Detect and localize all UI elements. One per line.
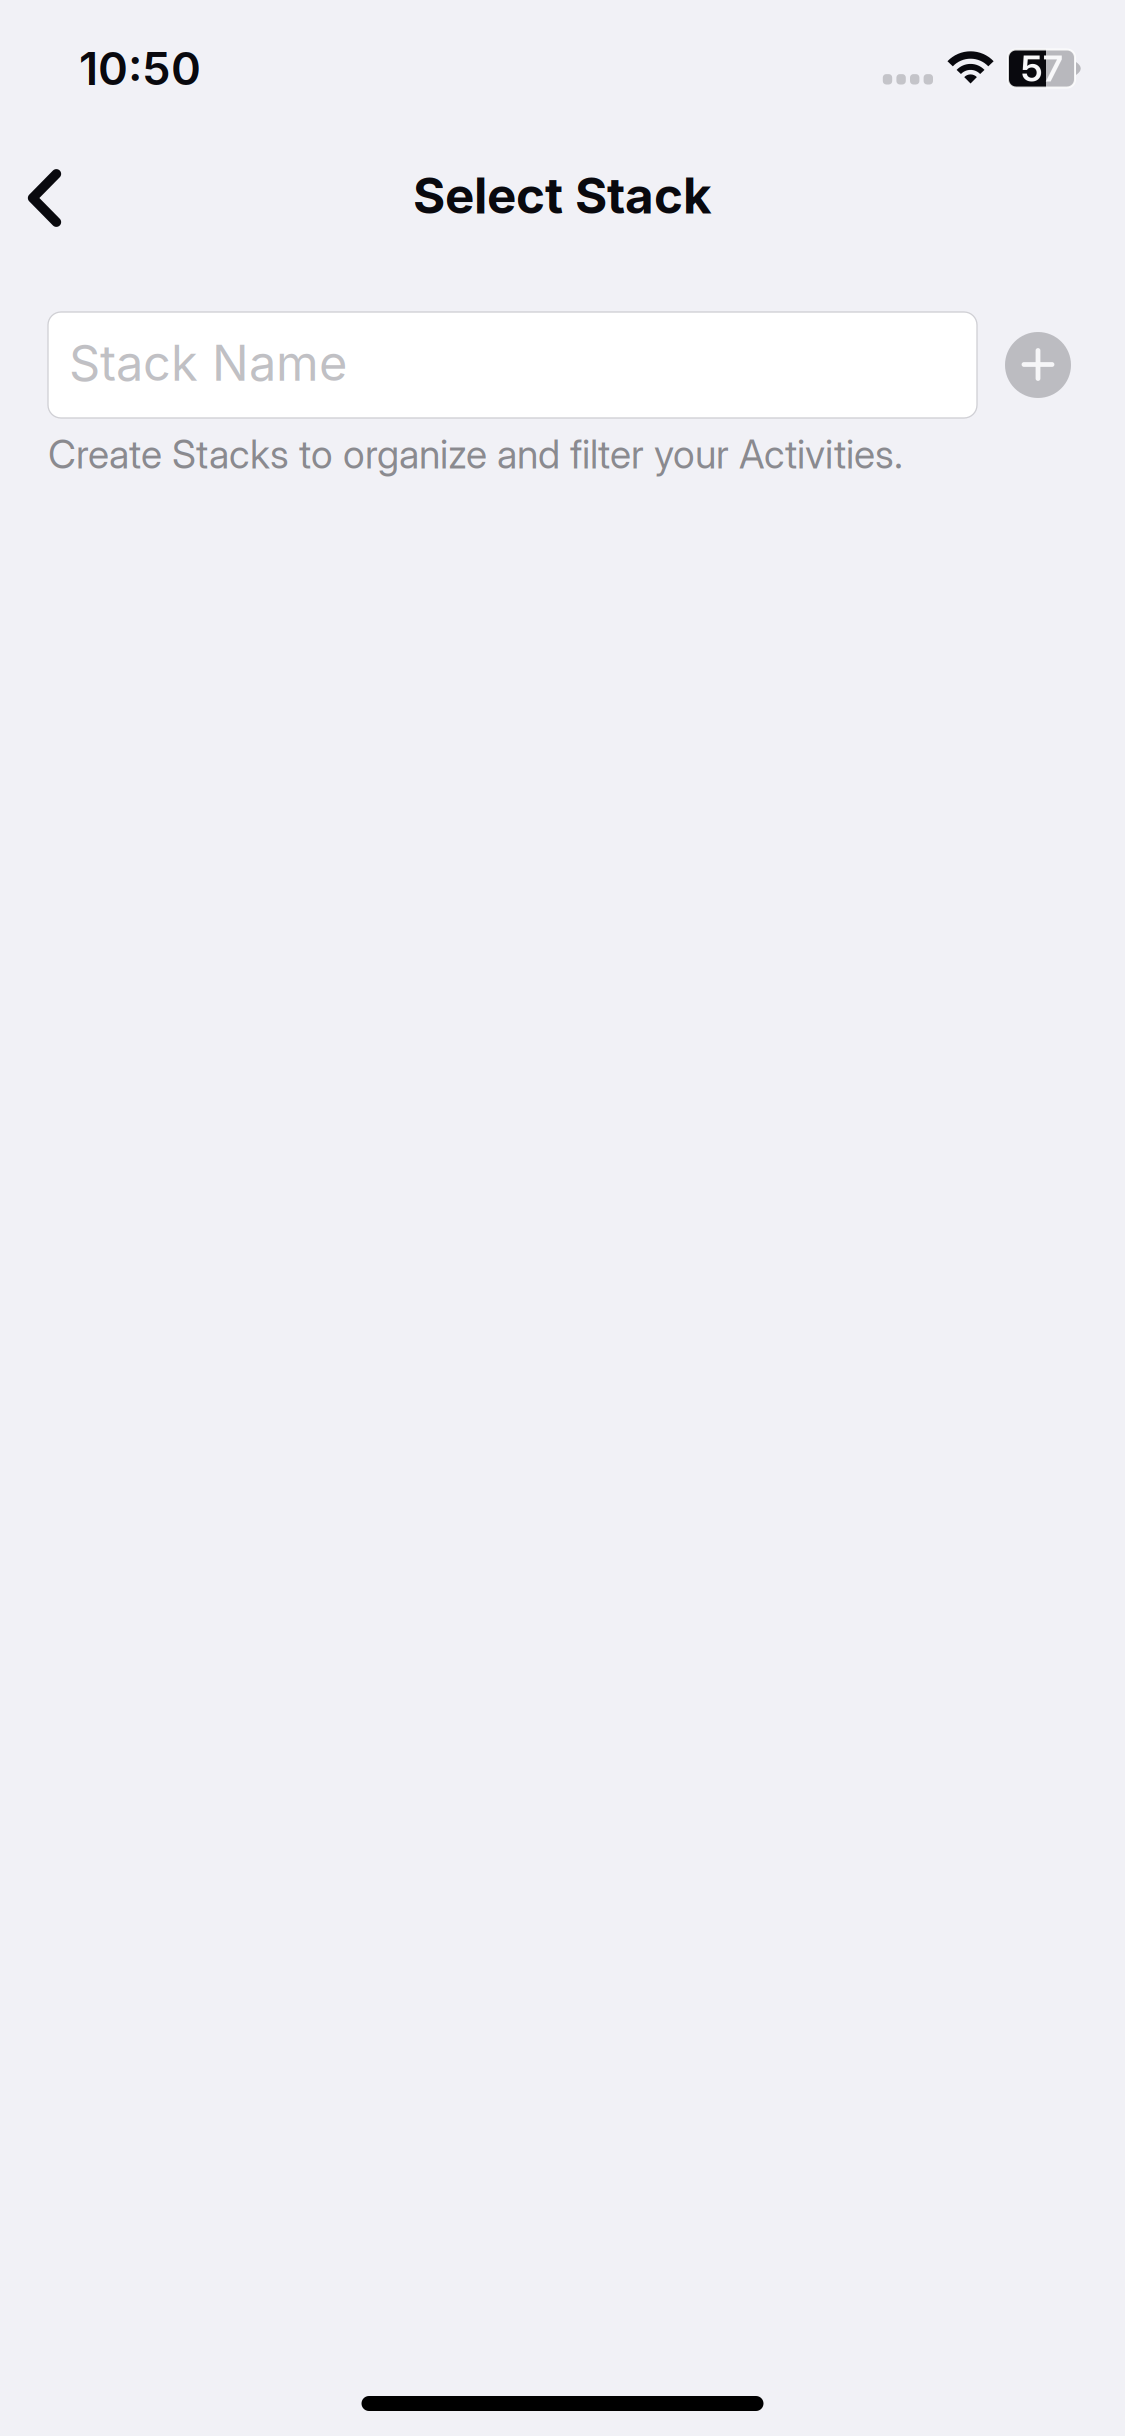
staticText: Stack Name xyxy=(69,334,347,392)
button[interactable]: Stack Name xyxy=(48,312,977,418)
button[interactable]: Add stack xyxy=(1005,332,1071,398)
staticText: 10:50 xyxy=(79,41,201,96)
staticText: Select Stack xyxy=(413,166,712,225)
button[interactable]: Back xyxy=(0,149,89,241)
staticText: Create Stacks to organize and filter you… xyxy=(48,431,903,478)
staticText: 57 xyxy=(1021,47,1063,90)
